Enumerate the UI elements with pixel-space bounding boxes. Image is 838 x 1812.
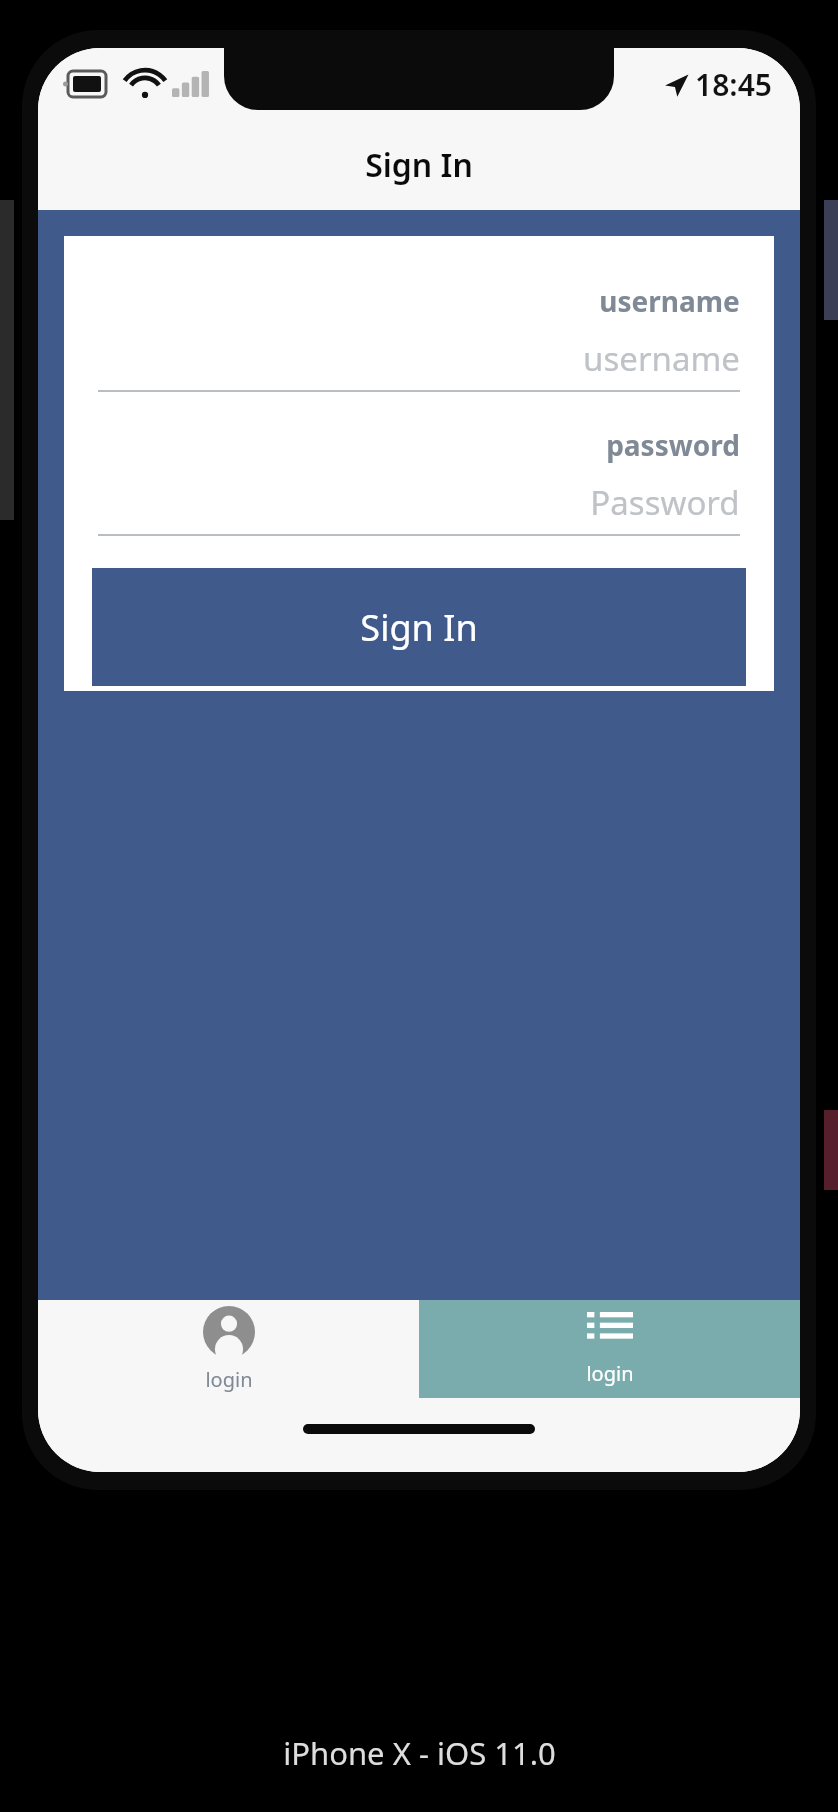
- button[interactable]: Login profile tab: [38, 1300, 419, 1398]
- button[interactable]: Login list tab: [419, 1300, 800, 1398]
- staticText: username: [583, 336, 740, 380]
- staticText: login: [205, 1366, 253, 1393]
- button[interactable]: Sign In: [92, 568, 746, 686]
- staticText: Password: [590, 480, 740, 524]
- other: Login list tab: [587, 1312, 633, 1350]
- staticText: Sign In: [365, 143, 473, 187]
- staticText: 18:45: [695, 64, 772, 105]
- button[interactable]: Password: [98, 480, 740, 524]
- staticText: username: [599, 282, 740, 320]
- other: Login profile tab: [203, 1306, 255, 1358]
- staticText: login: [586, 1360, 634, 1387]
- button[interactable]: username: [98, 336, 740, 380]
- staticText: password: [606, 426, 740, 464]
- staticText: iPhone X - iOS 11.0: [283, 1732, 556, 1774]
- staticText: Sign In: [360, 603, 478, 652]
